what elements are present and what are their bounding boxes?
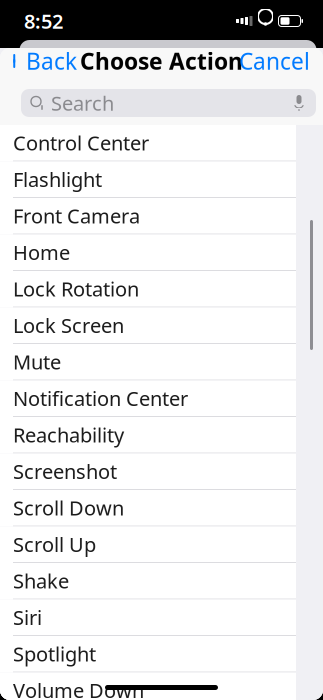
staticText: 8:52 (24, 8, 63, 34)
button[interactable]: Front Camera (0, 198, 296, 234)
staticText: Front Camera (13, 202, 140, 229)
staticText: Reachability (13, 421, 124, 448)
button[interactable]: Search (21, 89, 316, 117)
staticText: Spotlight (13, 640, 96, 667)
button[interactable]: Control Center (0, 125, 296, 161)
staticText: Shake (13, 567, 69, 594)
button[interactable]: Siri (0, 599, 296, 636)
staticText: Lock Rotation (13, 275, 139, 302)
staticText: Mute (13, 348, 61, 375)
staticText: Cancel (239, 46, 310, 76)
button[interactable]: Shake (0, 563, 296, 599)
button[interactable]: Lock Screen (0, 307, 296, 344)
button[interactable]: Notification Center (0, 380, 296, 417)
button[interactable]: Flashlight (0, 161, 296, 198)
staticText: Control Center (13, 129, 149, 156)
button[interactable]: Volume Down (0, 672, 296, 700)
button[interactable]: Scroll Down (0, 490, 296, 526)
button[interactable]: Home (0, 234, 296, 271)
staticText: Screenshot (13, 458, 117, 485)
button[interactable]: Mute (0, 344, 296, 380)
staticText: Notification Center (13, 385, 188, 412)
staticText: Home (13, 239, 70, 266)
staticText: Back (26, 46, 77, 76)
staticText: Search (51, 90, 114, 116)
staticText: Lock Screen (13, 312, 124, 339)
button[interactable]: Lock Rotation (0, 271, 296, 307)
staticText: Choose Action (80, 46, 243, 76)
staticText: Volume Down (13, 677, 144, 700)
button[interactable]: Back (0, 38, 77, 84)
button[interactable]: Screenshot (0, 453, 296, 490)
staticText: Scroll Up (13, 531, 96, 558)
button[interactable]: Spotlight (0, 636, 296, 672)
button[interactable]: Scroll Up (0, 526, 296, 563)
staticText: Flashlight (13, 166, 102, 193)
staticText: Siri (13, 604, 42, 631)
button[interactable]: Cancel (239, 38, 323, 84)
button[interactable]: Reachability (0, 417, 296, 453)
staticText: Scroll Down (13, 494, 124, 521)
